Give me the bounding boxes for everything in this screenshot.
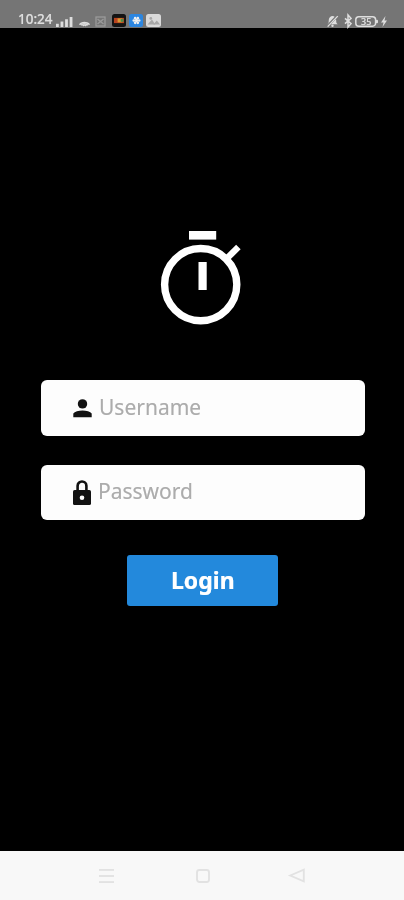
button[interactable]: Username — [41, 380, 365, 436]
button[interactable]: Back — [272, 851, 321, 900]
button[interactable]: Home — [178, 851, 227, 900]
button[interactable]: Recent apps — [82, 851, 131, 900]
staticText: 10:24 — [18, 10, 53, 28]
button[interactable]: Login — [127, 555, 278, 606]
button[interactable]: Password — [41, 465, 365, 520]
staticText: Username — [99, 393, 202, 422]
staticText: 35 — [361, 15, 372, 27]
staticText: Password — [98, 477, 193, 506]
staticText: Login — [171, 564, 235, 595]
